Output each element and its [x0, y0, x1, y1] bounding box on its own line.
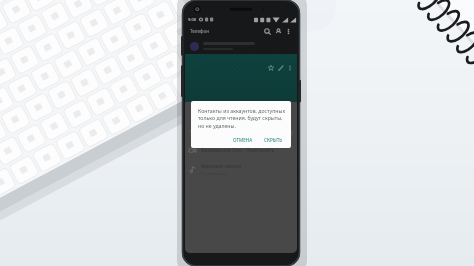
staticText: СКРЫТЬ: [264, 137, 283, 143]
staticText: Мелодия звонка: [201, 163, 242, 170]
staticText: How Tech: [191, 105, 237, 119]
button[interactable]: More options: [284, 27, 293, 36]
staticText: 8 (999) 999-99-99: [201, 127, 242, 134]
button[interactable]: Search: [262, 26, 273, 37]
button[interactable]: СКРЫТЬ: [261, 135, 286, 145]
button[interactable]: More: [286, 64, 294, 72]
button[interactable]: Видеовызов Duo Пригласить: [185, 146, 297, 155]
button[interactable]: Account: [273, 26, 284, 37]
button[interactable]: 8 (999) 999-99-99: [185, 126, 297, 141]
button[interactable]: Contact avatar: [190, 42, 199, 51]
staticText: Контакты из аккаунтов, доступных только …: [198, 107, 286, 130]
staticText: 9:08: [188, 17, 196, 22]
staticText: ОТМЕНА: [233, 137, 253, 143]
staticText: Видеовызов Duo Пригласить: [201, 147, 275, 154]
button[interactable]: Мелодия звонка: [185, 162, 297, 177]
staticText: Мобильный, Россия: [201, 135, 236, 140]
staticText: Телефон: [190, 28, 210, 34]
button[interactable]: Favorite: [266, 63, 276, 73]
button[interactable]: ОТМЕНА: [230, 135, 256, 145]
button[interactable]: Message: [285, 130, 293, 138]
button[interactable]: Edit: [276, 63, 286, 73]
